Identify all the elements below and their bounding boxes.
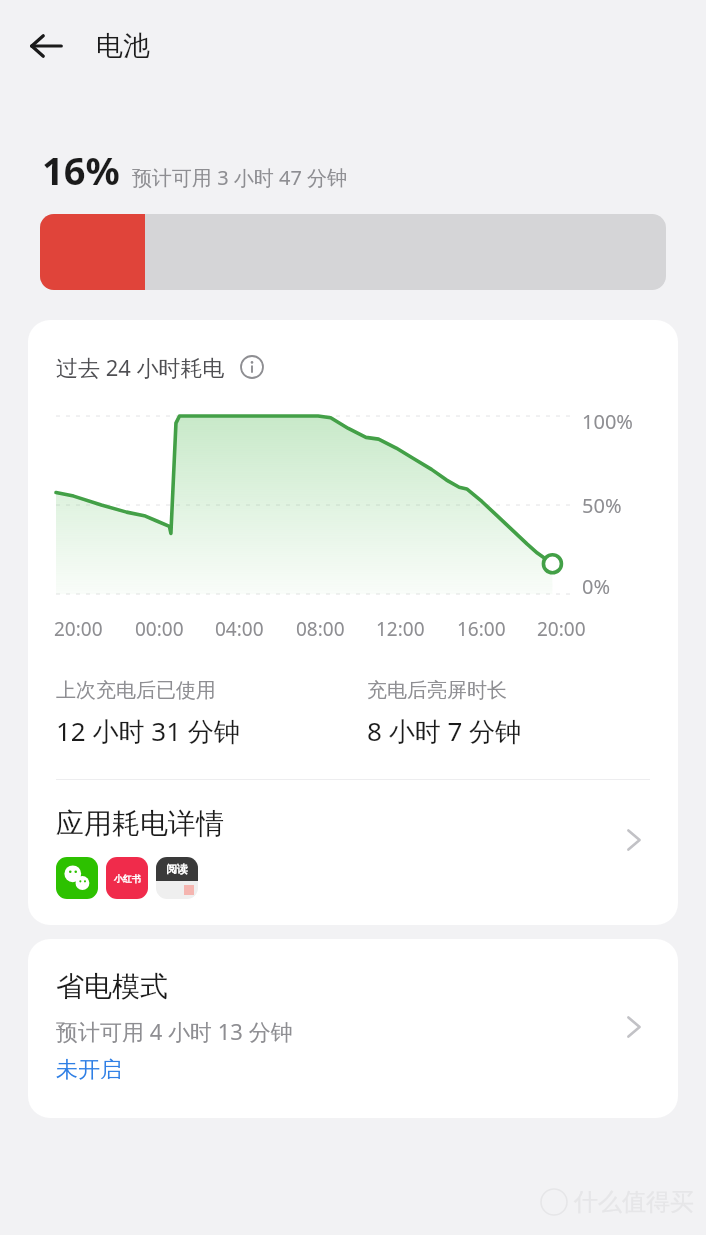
button[interactable]: 应用耗电详情 <box>28 780 678 899</box>
staticText: 8 小时 7 分钟 <box>367 713 522 749</box>
button[interactable]: 省电模式 <box>28 939 678 1118</box>
staticText: 上次充电后已使用 <box>56 678 216 703</box>
staticText: 电池 <box>96 29 150 63</box>
staticText: 12:00 <box>376 616 425 642</box>
staticText: 省电模式 <box>56 969 168 1004</box>
staticText: 什么值得买 <box>574 1187 694 1217</box>
staticText: 预计可用 4 小时 13 分钟 <box>56 1016 293 1046</box>
staticText: 08:00 <box>296 616 345 642</box>
staticText: 20:00 <box>54 616 103 642</box>
staticText: 过去 24 小时耗电 <box>56 352 225 382</box>
staticText: 阅读 <box>166 862 188 876</box>
staticText: 应用耗电详情 <box>56 806 224 841</box>
button[interactable]: Info <box>235 350 269 384</box>
staticText: 小红书 <box>114 873 141 884</box>
staticText: 预计可用 3 小时 47 分钟 <box>132 164 348 191</box>
button[interactable]: Back <box>18 18 74 74</box>
staticText: 04:00 <box>215 616 264 642</box>
staticText: 16% <box>42 144 120 196</box>
staticText: 12 小时 31 分钟 <box>56 713 240 749</box>
staticText: 00:00 <box>135 616 184 642</box>
staticText: 16:00 <box>457 616 506 642</box>
staticText: 充电后亮屏时长 <box>367 678 507 703</box>
staticText: 100% <box>582 408 633 435</box>
staticText: 0% <box>582 573 611 600</box>
staticText: 20:00 <box>537 616 586 642</box>
staticText: 50% <box>582 492 622 519</box>
staticText: 未开启 <box>56 1056 122 1084</box>
